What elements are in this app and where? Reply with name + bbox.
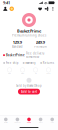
button[interactable]: You: [46, 118, 58, 123]
button[interactable]: 249.9: [34, 40, 46, 49]
button[interactable]: Free ship: [2, 61, 20, 65]
staticText: Standard: [12, 45, 23, 49]
staticText: Size: [8, 72, 11, 74]
button[interactable]: Share: [44, 6, 49, 11]
staticText: Premium running shoes: [12, 34, 46, 37]
staticText: Warranty: [25, 61, 35, 65]
button[interactable]: 129.9: [12, 40, 23, 49]
staticText: Color: [20, 72, 24, 74]
staticText: BasketPrime: [6, 53, 25, 57]
button[interactable]: Search: [12, 118, 23, 123]
button[interactable]: Shop: [23, 118, 35, 123]
staticText: BasketPrime: [17, 28, 41, 33]
staticText: Search: [14, 122, 20, 123]
button[interactable]: Color: [16, 68, 29, 74]
staticText: Free delivery tomorrow: [26, 52, 44, 59]
button[interactable]: Returns: [38, 61, 56, 65]
staticText: Care: [46, 72, 50, 74]
staticText: Returns: [43, 61, 54, 65]
button[interactable]: Size: [3, 68, 16, 74]
button[interactable]: Warranty: [20, 61, 38, 65]
staticText: Shop: [27, 122, 31, 123]
staticText: 129.9: [13, 40, 22, 45]
button[interactable]: Coins: [9, 6, 14, 11]
staticText: Free ship: [6, 61, 19, 65]
staticText: Home: [4, 122, 8, 123]
staticText: Premium: [34, 45, 46, 49]
staticText: Add to cart: [21, 90, 37, 93]
staticText: 9:41: [3, 0, 10, 5]
button[interactable]: More: [51, 6, 55, 11]
staticText: Sold by BasketShop: [16, 84, 42, 87]
button[interactable]: Fit: [29, 68, 42, 74]
button[interactable]: Account: [3, 6, 8, 11]
button[interactable]: Home: [0, 118, 12, 123]
staticText: You: [51, 122, 54, 123]
button[interactable]: Care: [42, 68, 55, 74]
button[interactable]: Add to cart: [18, 89, 40, 94]
staticText: 249.9: [36, 40, 45, 45]
button[interactable]: Favourites: [38, 6, 42, 11]
button[interactable]: Cart: [35, 118, 46, 123]
staticText: Fit: [35, 72, 36, 74]
